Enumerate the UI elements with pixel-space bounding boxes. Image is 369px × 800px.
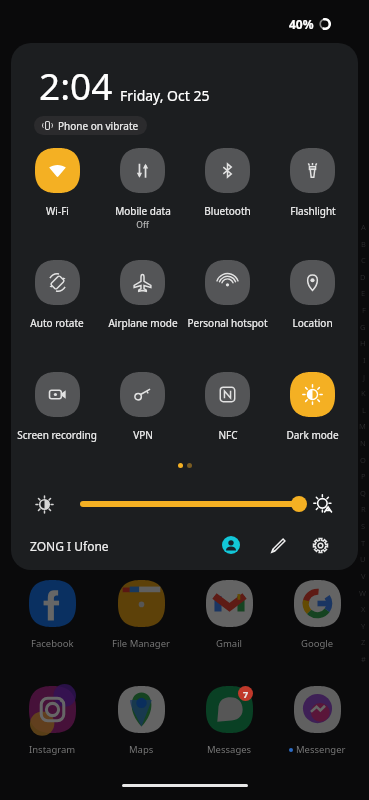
staticText: Personal hotspot	[187, 316, 268, 330]
staticText: Facebook	[31, 637, 74, 650]
staticText: V	[361, 571, 366, 581]
staticText: Phone on vibrate	[58, 119, 139, 133]
button[interactable]: Mobile data	[100, 148, 185, 231]
staticText: Auto rotate	[30, 316, 84, 330]
other: Battery 40 percent	[318, 17, 332, 31]
staticText: Maps	[129, 743, 154, 756]
button[interactable]: VPN	[100, 372, 185, 442]
staticText: Flashlight	[290, 204, 336, 218]
staticText: W	[359, 588, 366, 598]
staticText: Screen recording	[17, 428, 97, 442]
staticText: R	[361, 504, 366, 514]
button[interactable]: User account	[217, 531, 245, 559]
staticText: Messages	[207, 743, 252, 756]
button[interactable]: Flashlight	[270, 148, 355, 218]
button[interactable]: Screen recording	[14, 372, 100, 442]
staticText: E	[361, 288, 366, 298]
staticText: Mobile data	[115, 204, 171, 218]
staticText: N	[360, 438, 366, 448]
button[interactable]: 7	[185, 686, 273, 756]
staticText: D	[360, 272, 366, 282]
button[interactable]: Wi-Fi	[14, 148, 100, 218]
button[interactable]: Airplane mode	[100, 260, 185, 330]
staticText: L	[362, 405, 366, 415]
staticText: B	[361, 239, 366, 249]
staticText: ZONG I Ufone	[30, 538, 109, 554]
staticText: P	[361, 471, 366, 481]
staticText: VPN	[133, 428, 153, 442]
staticText: Off	[136, 219, 149, 231]
button[interactable]: Instagram	[8, 686, 97, 756]
staticText: Friday, Oct 25	[120, 86, 210, 105]
staticText: 7	[243, 688, 249, 700]
button[interactable]: Gmail	[185, 580, 273, 650]
button[interactable]: Maps	[97, 686, 185, 756]
staticText: J	[363, 372, 366, 382]
staticText: M	[359, 421, 366, 431]
staticText: Google	[301, 637, 334, 650]
button[interactable]: File Manager	[97, 580, 185, 650]
staticText: NFC	[218, 428, 238, 442]
staticText: U	[360, 554, 366, 564]
button[interactable]: Facebook	[8, 580, 97, 650]
staticText: O	[360, 455, 366, 465]
button[interactable]: Dark mode	[270, 372, 355, 442]
staticText: #	[361, 654, 366, 664]
button[interactable]: Settings	[306, 531, 334, 559]
staticText: Dark mode	[286, 428, 339, 442]
button[interactable]: ZONG I Ufone	[24, 533, 115, 559]
staticText: K	[361, 388, 366, 398]
staticText: Location	[292, 316, 333, 330]
staticText: Instagram	[29, 743, 76, 756]
button[interactable]: NFC	[185, 372, 270, 442]
staticText: A	[361, 222, 366, 232]
button[interactable]: Edit quick settings	[264, 531, 292, 559]
staticText: I	[363, 355, 366, 365]
staticText: 40%	[289, 16, 314, 32]
staticText: Airplane mode	[108, 316, 178, 330]
staticText: G	[360, 322, 366, 332]
staticText: H	[360, 338, 366, 348]
staticText: X	[361, 604, 366, 614]
staticText: File Manager	[112, 637, 170, 650]
button[interactable]: Phone on vibrate	[34, 116, 147, 135]
staticText: Z	[361, 637, 366, 647]
staticText: 2:04	[39, 60, 113, 110]
staticText: Gmail	[216, 637, 243, 650]
button[interactable]: Google	[273, 580, 361, 650]
button[interactable]: Bluetooth	[185, 148, 270, 218]
staticText: F	[362, 305, 366, 315]
staticText: Q	[360, 488, 366, 498]
button[interactable]: Messenger	[273, 686, 361, 756]
staticText: Wi-Fi	[46, 204, 69, 218]
button[interactable]: Personal hotspot	[185, 260, 270, 330]
staticText: C	[361, 255, 366, 265]
staticText: Y	[361, 621, 366, 631]
staticText: S	[361, 521, 366, 531]
button[interactable]: Location	[270, 260, 355, 330]
staticText: Bluetooth	[204, 204, 251, 218]
staticText: T	[361, 538, 366, 548]
staticText: Messenger	[296, 743, 346, 756]
button[interactable]: Auto rotate	[14, 260, 100, 330]
